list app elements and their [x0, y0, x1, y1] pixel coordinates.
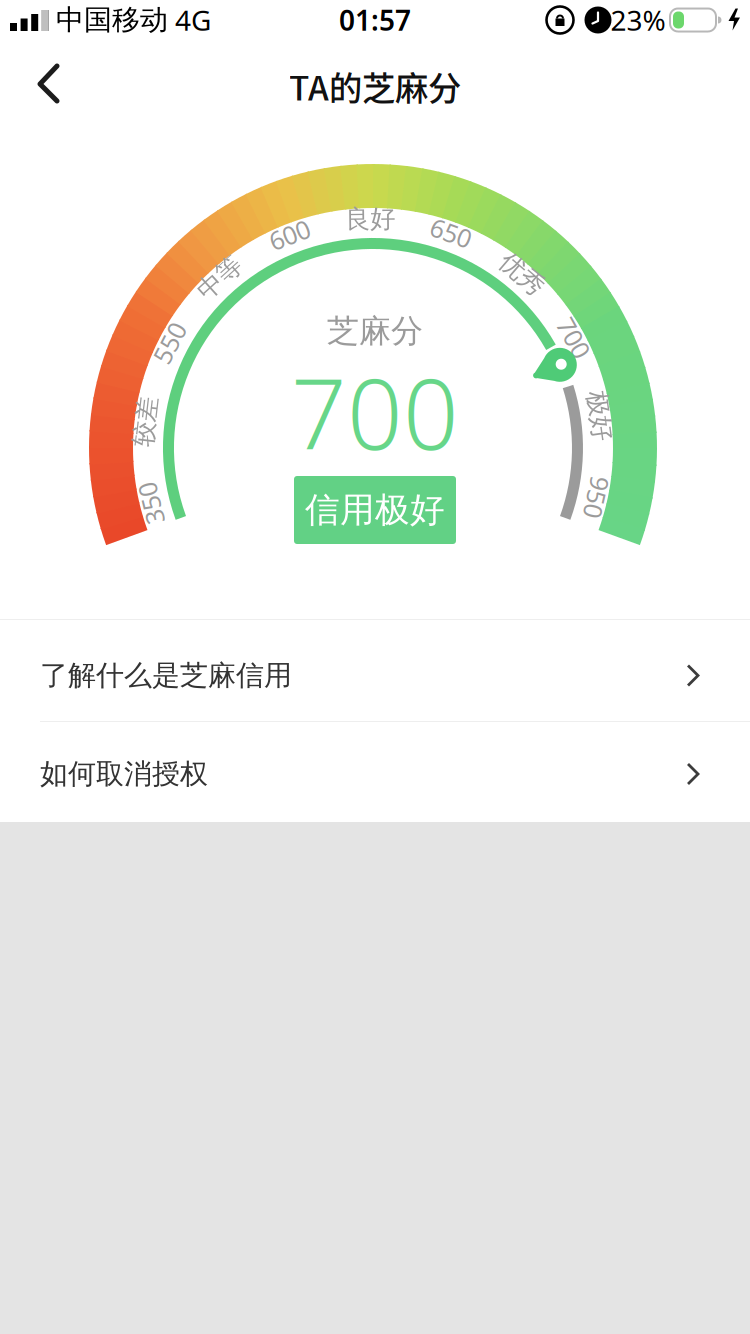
staticText: 4G: [175, 1, 211, 39]
staticText: 01:57: [339, 1, 411, 39]
staticText: 600: [268, 218, 310, 252]
staticText: TA的芝麻分: [289, 62, 461, 110]
staticText: 信用极好: [305, 489, 445, 531]
staticText: 700: [291, 347, 459, 477]
staticText: 优秀: [497, 259, 547, 290]
staticText: 650: [430, 216, 472, 249]
staticText: 350: [130, 487, 172, 520]
button[interactable]: 了解什么是芝麻信用: [0, 620, 750, 722]
button[interactable]: 如何取消授权: [0, 722, 750, 822]
staticText: 了解什么是芝麻信用: [40, 658, 292, 693]
button[interactable]: Back: [24, 58, 76, 110]
staticText: 良好: [345, 203, 395, 235]
staticText: 700: [553, 321, 595, 354]
staticText: 950: [576, 480, 618, 514]
staticText: 23%: [610, 1, 665, 39]
staticText: 极好: [575, 400, 625, 431]
staticText: 芝麻分: [327, 311, 423, 351]
staticText: 中国移动: [56, 3, 168, 37]
staticText: 较差: [120, 406, 170, 437]
staticText: 中等: [194, 262, 244, 294]
staticText: 550: [148, 326, 190, 360]
staticText: 如何取消授权: [40, 757, 208, 791]
